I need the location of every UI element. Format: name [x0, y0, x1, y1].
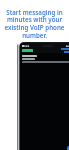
button[interactable] — [20, 54, 69, 64]
button[interactable]: New message — [67, 146, 69, 150]
staticText: Start messaging in minutes with your exi… — [3, 8, 66, 40]
button[interactable] — [22, 48, 69, 53]
